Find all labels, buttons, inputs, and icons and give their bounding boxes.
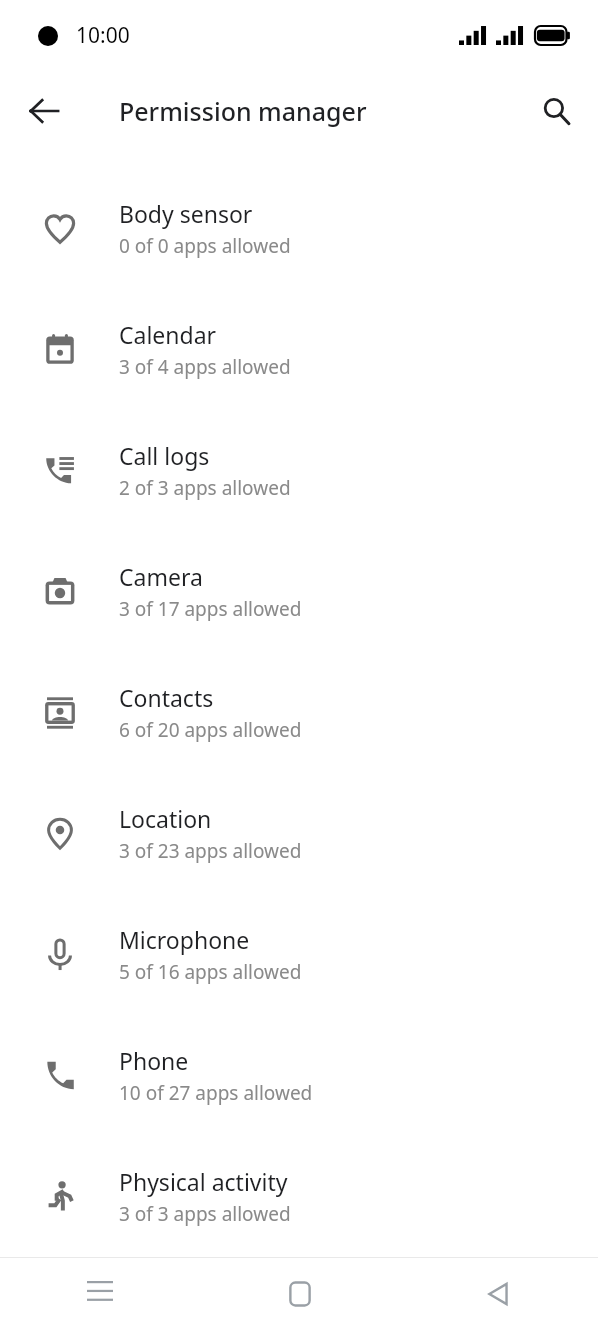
staticText: Body sensor	[119, 198, 253, 229]
button[interactable]: Back	[399, 1258, 598, 1330]
button[interactable]: Microphone	[0, 894, 598, 1015]
button[interactable]: Physical activity	[0, 1136, 598, 1257]
button[interactable]: Location	[0, 773, 598, 894]
staticText: Calendar	[119, 319, 217, 350]
staticText: Call logs	[119, 440, 210, 471]
button[interactable]: Home	[200, 1258, 399, 1330]
staticText: 5 of 16 apps allowed	[119, 959, 302, 985]
staticText: 6 of 20 apps allowed	[119, 717, 302, 743]
staticText: Contacts	[119, 682, 214, 713]
staticText: Phone	[119, 1045, 189, 1076]
button[interactable]: Call logs	[0, 410, 598, 531]
staticText: 2 of 3 apps allowed	[119, 475, 291, 501]
staticText: 3 of 23 apps allowed	[119, 838, 302, 864]
button[interactable]: Search	[528, 83, 584, 139]
staticText: 0 of 0 apps allowed	[119, 233, 291, 259]
staticText: 3 of 17 apps allowed	[119, 596, 302, 622]
button[interactable]: Contacts	[0, 652, 598, 773]
button[interactable]: Back	[16, 83, 72, 139]
staticText: Microphone	[119, 924, 250, 955]
staticText: Permission manager	[119, 94, 367, 128]
staticText: Physical activity	[119, 1166, 288, 1197]
button[interactable]: Phone	[0, 1015, 598, 1136]
staticText: 10 of 27 apps allowed	[119, 1080, 313, 1106]
button[interactable]: Calendar	[0, 289, 598, 410]
staticText: Camera	[119, 561, 203, 592]
staticText: 3 of 4 apps allowed	[119, 354, 291, 380]
button[interactable]: Recent apps	[0, 1258, 200, 1330]
button[interactable]: Body sensor	[0, 168, 598, 289]
staticText: 3 of 3 apps allowed	[119, 1201, 291, 1227]
staticText: 10:00	[76, 21, 130, 50]
button[interactable]: Camera	[0, 531, 598, 652]
staticText: Location	[119, 803, 212, 834]
